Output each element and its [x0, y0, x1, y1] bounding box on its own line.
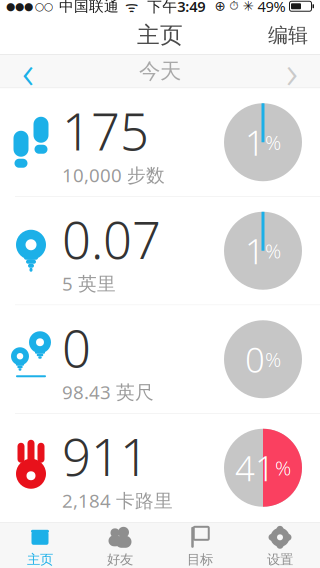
- staticText: 主页: [137, 21, 183, 49]
- staticText: ○○: [35, 0, 53, 12]
- staticText: 10,000 步数: [62, 162, 165, 187]
- staticText: %: [275, 454, 291, 481]
- staticText: 98.43 英尺: [62, 379, 154, 404]
- staticText: ⊕: [214, 0, 225, 14]
- button[interactable]: 911: [0, 414, 320, 522]
- button[interactable]: 0: [0, 305, 320, 414]
- button[interactable]: 好友: [80, 522, 160, 568]
- staticText: 好友: [107, 551, 133, 568]
- button[interactable]: Next day: [264, 54, 320, 88]
- staticText: 设置: [267, 551, 293, 568]
- staticText: 2,184 卡路里: [62, 488, 173, 513]
- staticText: 主页: [27, 551, 53, 568]
- button[interactable]: 主页: [0, 522, 80, 568]
- staticText: 1: [245, 228, 265, 274]
- staticText: %: [265, 237, 281, 264]
- staticText: 911: [62, 423, 149, 490]
- staticText: 编辑: [268, 23, 308, 48]
- staticText: 下午3:49: [147, 0, 205, 16]
- button[interactable]: 编辑: [256, 15, 320, 56]
- staticText: ●●●: [6, 0, 33, 12]
- staticText: 5 英里: [62, 271, 116, 296]
- staticText: ⏱: [229, 0, 238, 12]
- staticText: ›: [286, 41, 298, 101]
- button[interactable]: 0.07: [0, 197, 320, 305]
- staticText: 41: [235, 445, 275, 491]
- staticText: 49%: [257, 0, 285, 16]
- staticText: 0.07: [62, 206, 161, 273]
- staticText: ‹: [22, 41, 34, 101]
- staticText: ᯤ: [121, 0, 138, 16]
- staticText: ✳: [242, 0, 253, 14]
- staticText: 1: [245, 119, 265, 165]
- staticText: 目标: [187, 551, 213, 568]
- staticText: 今天: [139, 58, 181, 84]
- staticText: %: [265, 129, 281, 156]
- staticText: 中国联通: [55, 0, 119, 15]
- button[interactable]: 设置: [240, 522, 320, 568]
- button[interactable]: Previous day: [0, 54, 56, 88]
- button[interactable]: 目标: [160, 522, 240, 568]
- staticText: 0: [245, 336, 265, 382]
- button[interactable]: 175: [0, 88, 320, 197]
- staticText: 175: [62, 97, 149, 164]
- staticText: 0: [62, 314, 91, 381]
- staticText: %: [265, 346, 281, 373]
